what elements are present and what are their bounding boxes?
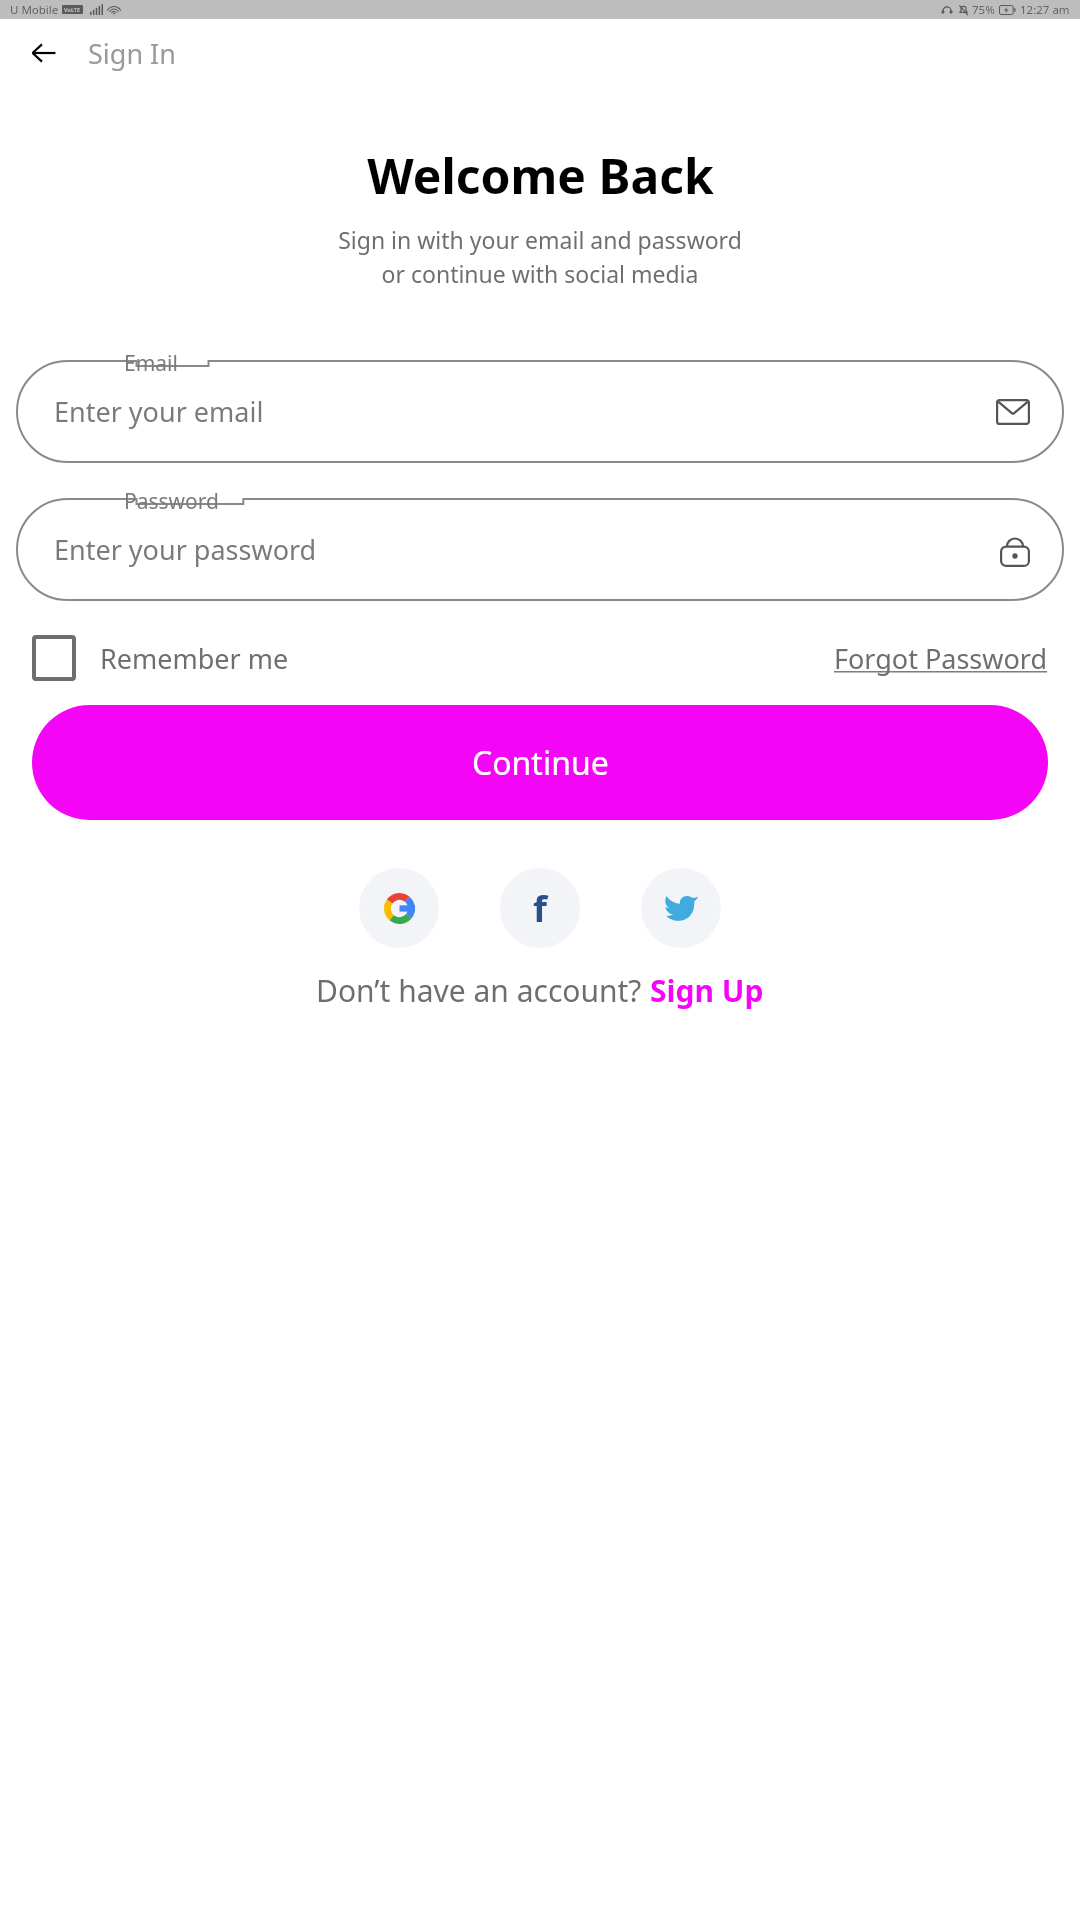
staticText: Email bbox=[124, 349, 178, 378]
staticText: Enter your password bbox=[54, 531, 1000, 568]
staticText: Password bbox=[124, 487, 219, 516]
staticText: VoLTE bbox=[64, 6, 81, 13]
button[interactable]: Sign Up bbox=[650, 970, 764, 1011]
staticText: Enter your email bbox=[54, 393, 996, 430]
button[interactable]: Sign in with Google bbox=[359, 868, 439, 948]
button[interactable]: Continue bbox=[32, 705, 1048, 820]
staticText: Remember me bbox=[100, 640, 289, 677]
staticText: f bbox=[533, 884, 547, 933]
button[interactable]: Back bbox=[20, 29, 68, 77]
staticText: 12:27 am bbox=[1020, 2, 1070, 18]
button[interactable]: Sign in with Twitter bbox=[641, 868, 721, 948]
button[interactable]: Password bbox=[16, 487, 1064, 601]
staticText: Sign in with your email and password or … bbox=[338, 224, 742, 289]
button[interactable]: Email bbox=[16, 349, 1064, 463]
staticText: Continue bbox=[472, 741, 609, 785]
button[interactable]: Remember me bbox=[32, 635, 289, 681]
staticText: Sign In bbox=[88, 35, 176, 72]
button[interactable]: Forgot Password bbox=[834, 640, 1048, 677]
staticText: 75% bbox=[972, 2, 995, 18]
staticText: Don’t have an account? bbox=[316, 970, 650, 1011]
staticText: Forgot Password bbox=[834, 640, 1048, 677]
button[interactable]: Sign in with Facebook bbox=[500, 868, 580, 948]
staticText: Welcome Back bbox=[367, 143, 714, 208]
staticText: Sign Up bbox=[650, 970, 764, 1011]
staticText: U Mobile bbox=[10, 2, 59, 18]
